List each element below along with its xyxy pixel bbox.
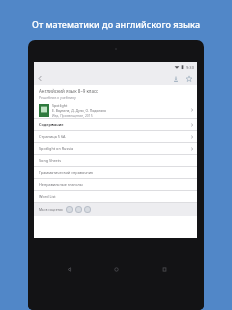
button[interactable]: Содержание <box>34 119 197 130</box>
staticText: Грамматический справочник <box>39 170 194 175</box>
staticText: Song Sheets <box>39 158 194 163</box>
staticText: Word List <box>39 194 194 199</box>
staticText: Неправильные глаголы <box>39 182 194 187</box>
button[interactable]: Odnoklassniki <box>75 206 82 213</box>
button[interactable]: Song Sheets <box>34 155 197 166</box>
button[interactable]: Twitter <box>84 206 91 213</box>
staticText: Содержание <box>39 122 190 127</box>
staticText: 9:30 <box>186 65 194 70</box>
staticText: Мы в соцсетях <box>39 207 63 212</box>
button[interactable]: Download <box>169 72 182 85</box>
staticText: Изд. Просвещение, 2015 <box>52 113 93 118</box>
button[interactable]: Home <box>109 262 123 276</box>
staticText: Английский язык 8–9 класс <box>39 88 99 94</box>
button[interactable]: Favorite <box>182 72 195 85</box>
button[interactable]: Грамматический справочник <box>34 167 197 178</box>
button[interactable]: Spotlight on Russia <box>34 143 197 154</box>
staticText: Е. Ваулина, Д. Дули, О. Подоляко <box>52 108 106 113</box>
staticText: Решебник к учебнику <box>39 95 76 100</box>
staticText: Spotlight <box>52 103 68 108</box>
staticText: Spotlight on Russia <box>39 146 190 151</box>
staticText: От математики до английского языка <box>32 18 200 30</box>
button[interactable]: Word List <box>34 191 197 202</box>
button[interactable]: Back <box>62 262 76 276</box>
button[interactable]: Back <box>34 72 47 85</box>
button[interactable]: Spotlight <box>34 102 197 118</box>
staticText: Страница 5 6A <box>39 134 190 139</box>
button[interactable]: VK <box>66 206 73 213</box>
button[interactable]: Recent apps <box>157 262 171 276</box>
button[interactable]: Страница 5 6A <box>34 131 197 142</box>
button[interactable]: Неправильные глаголы <box>34 179 197 190</box>
